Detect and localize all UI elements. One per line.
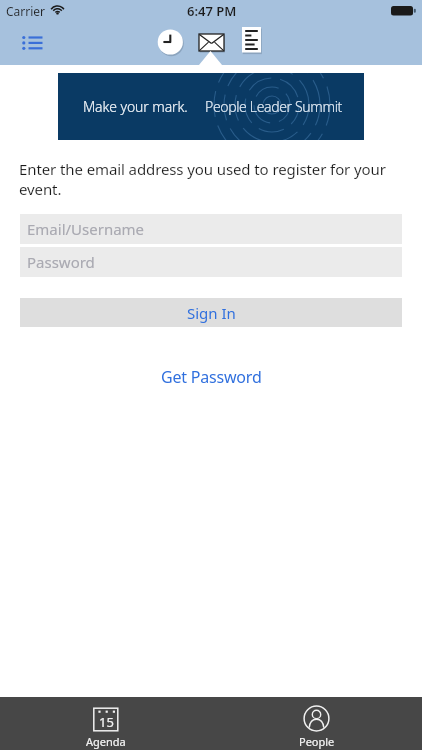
staticText: Password: [27, 252, 95, 272]
button[interactable]: Make your mark.: [58, 73, 364, 140]
staticText: People: [299, 734, 335, 749]
button[interactable]: [239, 24, 265, 56]
staticText: Enter the email address you used to regi…: [19, 159, 386, 199]
staticText: Agenda: [86, 734, 126, 749]
staticText: Carrier: [6, 3, 46, 19]
button[interactable]: 15: [0, 697, 211, 750]
button[interactable]: People: [211, 697, 422, 750]
staticText: 15: [99, 713, 114, 731]
staticText: People Leader Summit: [205, 97, 342, 116]
staticText: 6:47 PM: [187, 2, 237, 20]
staticText: Sign In: [187, 303, 236, 323]
button[interactable]: Password: [20, 247, 402, 277]
button[interactable]: [196, 31, 226, 54]
button[interactable]: Sign In: [20, 298, 402, 327]
button[interactable]: Get Password: [161, 366, 262, 388]
button[interactable]: [157, 29, 184, 56]
button[interactable]: Email/Username: [20, 214, 402, 244]
staticText: Make your mark.: [83, 97, 188, 116]
button[interactable]: [16, 30, 48, 54]
staticText: Email/Username: [27, 219, 145, 239]
